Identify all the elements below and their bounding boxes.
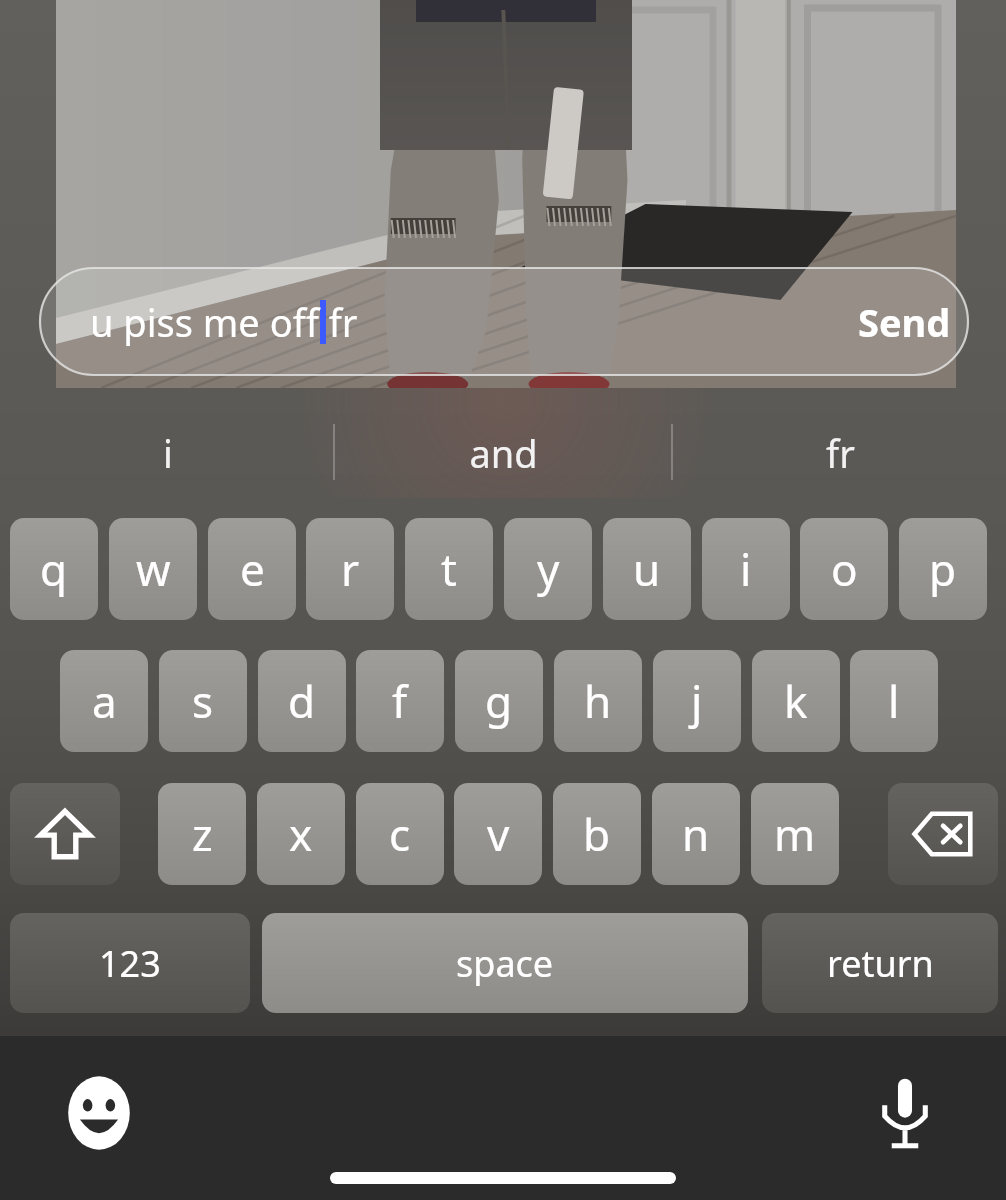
staticText: 123 (99, 939, 161, 988)
staticText: z (192, 804, 213, 864)
button[interactable]: g (455, 650, 543, 752)
button[interactable]: o (800, 518, 888, 620)
staticText: n (682, 804, 710, 864)
button[interactable]: r (306, 518, 394, 620)
staticText: y (537, 539, 560, 599)
button[interactable]: and (393, 408, 613, 498)
staticText: p (929, 539, 957, 599)
staticText: u (633, 539, 661, 599)
staticText: v (487, 804, 510, 864)
button[interactable]: n (652, 783, 740, 885)
button[interactable]: c (356, 783, 444, 885)
button[interactable]: m (751, 783, 839, 885)
button[interactable]: 123 (10, 913, 250, 1013)
staticText: b (583, 804, 611, 864)
staticText: f (392, 671, 408, 731)
button[interactable]: Send (840, 268, 968, 375)
staticText: g (485, 671, 513, 731)
staticText: t (441, 539, 457, 599)
button[interactable]: h (554, 650, 642, 752)
staticText: return (827, 939, 934, 988)
button[interactable]: space (262, 913, 748, 1013)
staticText: h (584, 671, 612, 731)
staticText: u piss me off fr (90, 296, 358, 348)
button[interactable]: s (159, 650, 247, 752)
staticText: Send (858, 296, 951, 348)
button[interactable]: return (762, 913, 998, 1013)
staticText: q (40, 539, 68, 599)
staticText: fr (826, 427, 855, 479)
button[interactable]: Shift (10, 783, 120, 885)
button[interactable]: e (208, 518, 296, 620)
button[interactable]: l (850, 650, 938, 752)
staticText: e (240, 539, 265, 599)
staticText: l (888, 671, 900, 731)
staticText: a (92, 671, 117, 731)
button[interactable]: fr (730, 408, 950, 498)
staticText: and (469, 427, 538, 479)
staticText: k (784, 671, 808, 731)
button[interactable]: u piss me off fr (40, 268, 840, 375)
button[interactable]: x (257, 783, 345, 885)
staticText: r (341, 539, 360, 599)
button[interactable]: y (504, 518, 592, 620)
staticText: j (691, 671, 703, 731)
staticText: o (831, 539, 858, 599)
button[interactable]: Emoji (60, 1074, 138, 1152)
button[interactable]: i (58, 408, 278, 498)
button[interactable]: Voice input (866, 1074, 944, 1152)
button[interactable]: k (752, 650, 840, 752)
button[interactable]: j (653, 650, 741, 752)
staticText: space (456, 939, 554, 988)
button[interactable]: q (10, 518, 98, 620)
button[interactable]: p (899, 518, 987, 620)
staticText: s (192, 671, 214, 731)
button[interactable]: w (109, 518, 197, 620)
button[interactable]: z (158, 783, 246, 885)
staticText: i (163, 427, 173, 479)
button[interactable]: a (60, 650, 148, 752)
button[interactable]: i (702, 518, 790, 620)
button[interactable]: t (405, 518, 493, 620)
button[interactable]: d (258, 650, 346, 752)
staticText: w (136, 539, 171, 599)
button[interactable]: u (603, 518, 691, 620)
button[interactable]: b (553, 783, 641, 885)
button[interactable]: f (356, 650, 444, 752)
button[interactable]: Backspace (888, 783, 998, 885)
staticText: i (740, 539, 752, 599)
staticText: x (289, 804, 313, 864)
staticText: d (288, 671, 316, 731)
staticText: c (389, 804, 411, 864)
staticText: m (774, 804, 816, 864)
button[interactable]: v (454, 783, 542, 885)
